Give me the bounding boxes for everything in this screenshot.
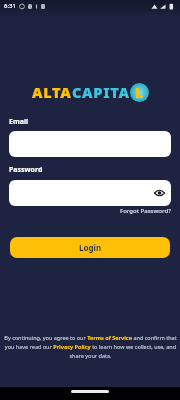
- staticText: By continuing, you agree to our Terms of…: [4, 334, 177, 360]
- button[interactable]: Login: [10, 237, 170, 258]
- staticText: CAPITA: [72, 82, 130, 102]
- staticText: Email: [9, 117, 29, 127]
- staticText: Password: [9, 165, 43, 175]
- button[interactable]: Forgot Password?: [120, 207, 171, 215]
- button[interactable]: [153, 187, 165, 199]
- button[interactable]: [9, 131, 171, 157]
- staticText: Login: [79, 242, 102, 253]
- staticText: 6:31: [4, 2, 16, 10]
- staticText: ALTA: [32, 82, 72, 102]
- staticText: L: [135, 83, 144, 102]
- button[interactable]: [9, 180, 171, 206]
